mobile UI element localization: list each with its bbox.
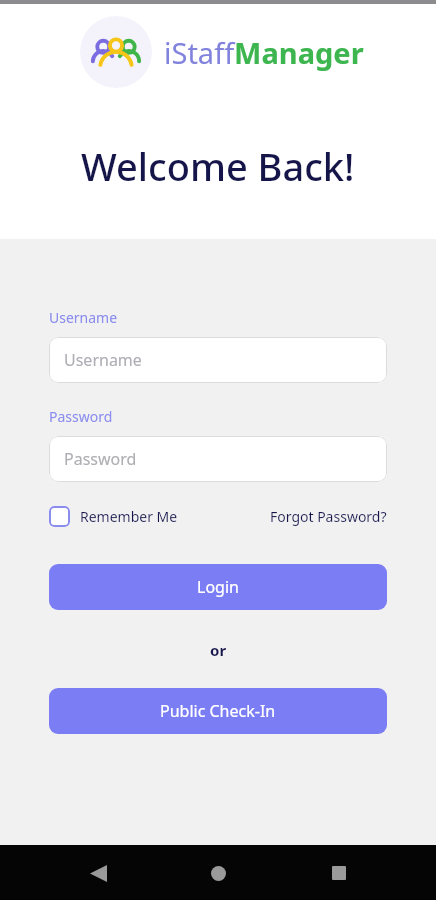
staticText: Username [64, 349, 142, 371]
staticText: Password [49, 407, 113, 426]
button[interactable]: Password [49, 436, 387, 482]
staticText: Forgot Password? [270, 507, 387, 526]
staticText: iStaffManager [164, 33, 364, 72]
staticText: Welcome Back! [81, 140, 355, 192]
button[interactable]: Username [49, 337, 387, 383]
staticText: Remember Me [80, 507, 178, 526]
staticText: Public Check-In [160, 700, 276, 722]
button[interactable]: Remember Me [49, 504, 178, 529]
button[interactable]: Recent apps [316, 850, 362, 896]
button[interactable]: Home [195, 850, 241, 896]
staticText: Username [49, 308, 118, 327]
button[interactable]: Login [49, 564, 387, 610]
staticText: Login [197, 576, 239, 598]
button[interactable]: Public Check-In [49, 688, 387, 734]
staticText: or [210, 640, 227, 660]
staticText: Password [64, 448, 137, 470]
button[interactable]: Back [75, 850, 121, 896]
button[interactable]: Forgot Password? [270, 505, 387, 528]
